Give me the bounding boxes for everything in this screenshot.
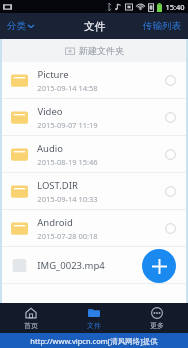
staticText: 2015-09-14 10:33	[37, 194, 98, 204]
button[interactable]: Select Audio	[165, 149, 176, 160]
staticText: 2015-08-19 15:46	[37, 157, 98, 167]
button[interactable]: Select LOST.DIR	[165, 186, 176, 197]
staticText: 文件	[87, 321, 101, 330]
button[interactable]: Select Video	[165, 112, 176, 123]
staticText: 首页	[24, 321, 38, 330]
button[interactable]: Add	[142, 249, 176, 283]
button[interactable]: LOST.DIR	[2, 173, 186, 209]
staticText: 更多	[150, 321, 164, 330]
button[interactable]: Select Picture	[165, 75, 176, 86]
staticText: 2015-09-07 11:19	[37, 120, 98, 130]
button[interactable]: 新建文件夹	[2, 39, 186, 62]
button[interactable]: Android	[2, 210, 186, 246]
button[interactable]: 分类	[0, 15, 40, 37]
button[interactable]: Select IMG_0023.mp4	[165, 260, 176, 271]
staticText: IMG_0023.mp4	[37, 259, 105, 272]
button[interactable]: Select Android	[165, 223, 176, 234]
button[interactable]: Picture	[2, 62, 186, 98]
button[interactable]: 传输列表	[136, 15, 188, 37]
staticText: Picture	[37, 68, 69, 81]
staticText: Audio	[37, 142, 63, 155]
button[interactable]: Audio	[2, 136, 186, 172]
button[interactable]: Video	[2, 99, 186, 135]
staticText: 15:40	[165, 2, 185, 12]
staticText: 2015-09-14 14:58	[37, 83, 98, 93]
staticText: 文件	[84, 20, 105, 33]
button[interactable]: 更多	[125, 303, 188, 333]
button[interactable]: 文件	[62, 303, 125, 333]
staticText: LOST.DIR	[37, 179, 78, 192]
button[interactable]: 首页	[0, 303, 62, 333]
staticText: 2015-07-28 00:18	[37, 231, 98, 241]
staticText: 传输列表	[143, 20, 181, 32]
staticText: 分类	[7, 20, 26, 32]
button[interactable]: IMG_0023.mp4	[2, 247, 186, 283]
staticText: 新建文件夹	[79, 45, 124, 56]
staticText: http://www.vipcn.com[清风网络]提供	[30, 336, 158, 346]
staticText: Video	[37, 105, 63, 118]
staticText: Android	[37, 216, 73, 229]
